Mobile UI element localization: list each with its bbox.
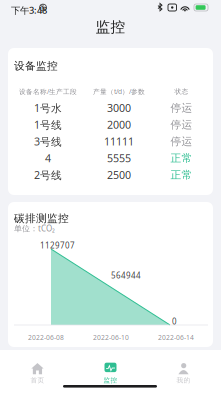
staticText: 产量（t/d）/参数 <box>93 87 145 96</box>
staticText: 停运 <box>170 118 192 131</box>
staticText: 1号水 <box>34 101 62 115</box>
staticText: 2022-06-10 <box>93 333 129 342</box>
staticText: 2022-06-14 <box>158 333 194 342</box>
staticText: 监控 <box>103 376 117 384</box>
staticText: 2000 <box>107 118 131 132</box>
staticText: 监控 <box>95 18 125 36</box>
button[interactable]: 我的 <box>147 360 220 386</box>
staticText: 设备名称/生产工段 <box>19 87 77 96</box>
staticText: 3000 <box>107 101 131 115</box>
staticText: 碳排测监控 <box>14 212 69 225</box>
staticText: 4 <box>45 151 51 165</box>
staticText: 下午3:48 <box>11 4 47 16</box>
staticText: 设备监控 <box>14 59 58 73</box>
staticText: 2号线 <box>34 168 62 182</box>
button[interactable]: 监控 <box>74 360 147 386</box>
staticText: 停运 <box>170 135 192 148</box>
staticText: 状态 <box>174 87 188 95</box>
staticText: 1129707 <box>40 240 75 251</box>
staticText: 5555 <box>107 151 131 165</box>
staticText: 564944 <box>111 270 141 281</box>
staticText: 0 <box>172 316 177 327</box>
staticText: 3号线 <box>34 134 62 149</box>
staticText: 正常 <box>170 168 192 181</box>
staticText: 2022-06-08 <box>28 333 64 342</box>
button[interactable]: 首页 <box>1 360 74 386</box>
staticText: 正常 <box>170 152 192 165</box>
staticText: 2500 <box>107 168 131 182</box>
staticText: 我的 <box>176 376 190 384</box>
staticText: 停运 <box>170 101 192 114</box>
staticText: 11111 <box>104 134 134 149</box>
staticText: 单位：tCO₂ <box>14 223 55 234</box>
staticText: 1号线 <box>34 118 62 132</box>
staticText: 首页 <box>30 376 44 384</box>
